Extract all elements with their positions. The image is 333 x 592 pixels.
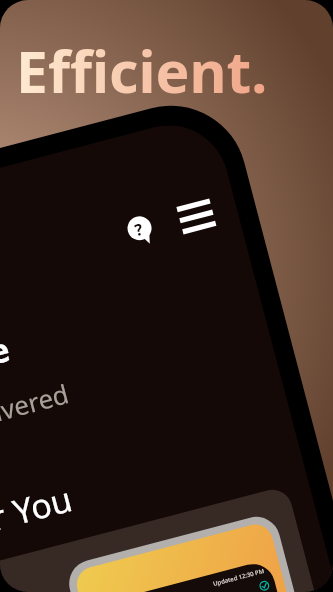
button[interactable]: Menu [172, 192, 221, 241]
staticText: For You [0, 475, 77, 550]
staticText: Fresh produce [0, 326, 15, 429]
button[interactable]: Help [118, 206, 162, 250]
staticText: Updated 12:30 PM [212, 567, 266, 588]
staticText: delivered [0, 375, 72, 438]
staticText: ? [132, 218, 145, 241]
staticText: Efficient. [16, 32, 268, 110]
